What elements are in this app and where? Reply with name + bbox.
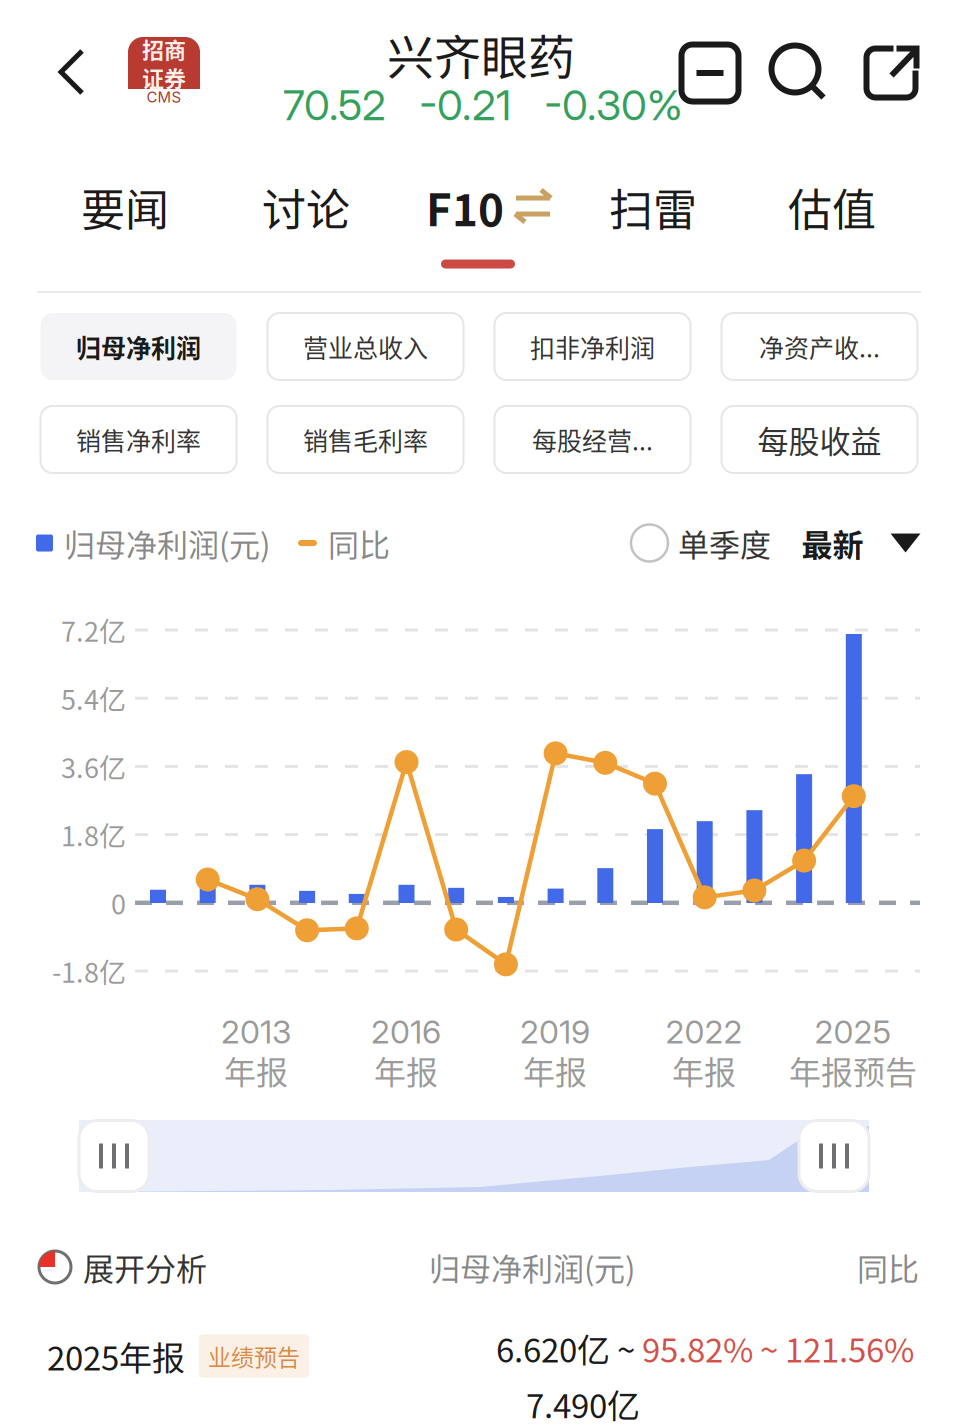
button[interactable]: Share <box>862 44 919 101</box>
staticText: 5.4亿 <box>61 679 126 718</box>
staticText: 营业总收入 <box>303 328 428 365</box>
staticText: F10 <box>426 175 504 239</box>
staticText: 2019 <box>520 1012 590 1051</box>
staticText: 展开分析 <box>83 1245 207 1289</box>
staticText: 1.8亿 <box>61 815 126 854</box>
staticText: 扣非净利润 <box>530 328 655 365</box>
button[interactable]: 招商证券 <box>128 37 200 105</box>
button[interactable]: 扣非净利润 <box>494 313 690 380</box>
button[interactable]: 归母净利润 <box>40 313 236 380</box>
button[interactable]: 销售净利率 <box>40 406 236 473</box>
staticText: 70.52 <box>283 80 386 130</box>
staticText: 兴齐眼药 <box>387 20 575 88</box>
staticText: 最新 <box>801 521 863 565</box>
staticText: 0 <box>111 883 126 922</box>
button[interactable]: 要闻 <box>81 167 169 247</box>
staticText: 7.490亿 <box>526 1380 640 1426</box>
button[interactable]: 销售毛利率 <box>267 406 463 473</box>
staticText: 2013 <box>221 1012 291 1051</box>
button[interactable]: 每股收益 <box>721 406 917 473</box>
button[interactable]: 估值 <box>788 167 876 247</box>
staticText: 2016 <box>371 1012 441 1051</box>
staticText: 归母净利润(元) <box>64 521 270 565</box>
staticText: 每股经营... <box>532 421 653 458</box>
staticText: 估值 <box>788 175 876 239</box>
staticText: 单季度 <box>678 521 771 565</box>
button[interactable]: Range end <box>799 1120 869 1191</box>
button[interactable]: Minimize <box>681 44 738 101</box>
staticText: 业绩预告 <box>208 1339 300 1373</box>
staticText: 每股收益 <box>757 417 881 462</box>
button[interactable]: 单季度 <box>631 521 771 565</box>
staticText: 3.6亿 <box>61 747 126 786</box>
button[interactable]: 营业总收入 <box>267 313 463 380</box>
staticText: -1.8亿 <box>52 951 126 991</box>
staticText: 销售净利率 <box>76 421 201 458</box>
button[interactable]: 讨论 <box>262 167 350 247</box>
staticText: 2022 <box>665 1012 742 1051</box>
staticText: 证券 <box>142 61 186 93</box>
staticText: 扫雷 <box>609 175 697 239</box>
staticText: -0.30% <box>544 80 683 130</box>
staticText: 2025年报 <box>47 1332 185 1380</box>
button[interactable]: Search <box>770 44 827 101</box>
staticText: 2025 <box>814 1012 891 1051</box>
button[interactable]: 业绩预告 <box>199 1334 309 1378</box>
staticText: -0.21 <box>419 80 511 130</box>
button[interactable]: Back <box>34 32 110 112</box>
button[interactable]: 每股经营... <box>494 406 690 473</box>
staticText: 销售毛利率 <box>303 421 428 458</box>
staticText: 归母净利润 <box>76 328 201 365</box>
button[interactable]: 扫雷 <box>609 167 697 247</box>
staticText: 招商 <box>142 33 186 64</box>
staticText: 讨论 <box>262 175 350 239</box>
staticText: 6.620亿 ~ <box>496 1324 642 1372</box>
staticText: 同比 <box>857 1245 919 1289</box>
staticText: 同比 <box>328 521 390 565</box>
staticText: 年报预告 <box>789 1047 917 1093</box>
staticText: 年报 <box>523 1047 587 1093</box>
staticText: CMS <box>146 88 181 106</box>
button[interactable]: F10 <box>426 167 554 247</box>
staticText: 7.2亿 <box>61 610 126 650</box>
staticText: 年报 <box>374 1047 438 1093</box>
staticText: 年报 <box>224 1047 288 1093</box>
button[interactable]: Range start <box>79 1120 149 1191</box>
staticText: 净资产收... <box>759 328 880 365</box>
staticText: 归母净利润(元) <box>429 1245 635 1289</box>
button[interactable]: 净资产收... <box>721 313 917 380</box>
staticText: 要闻 <box>81 175 169 239</box>
staticText: 95.82% ~ 121.56% <box>642 1324 914 1372</box>
button[interactable]: 最新 <box>801 521 920 565</box>
staticText: 年报 <box>672 1047 736 1093</box>
